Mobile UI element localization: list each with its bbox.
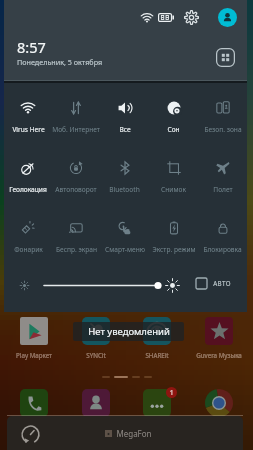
button[interactable]: User account [218, 8, 237, 27]
button[interactable]: 1 [130, 389, 184, 431]
button[interactable]: Сон [149, 85, 198, 134]
button[interactable]: Экстр. режим [149, 205, 198, 254]
staticText: Безоп. зона [204, 125, 242, 134]
button[interactable]: Virus Here [4, 85, 52, 134]
staticText: Все [119, 125, 131, 134]
button[interactable]: Моб. Интернет [52, 85, 100, 134]
staticText: Фонарик [14, 245, 43, 254]
staticText: Сон [167, 125, 180, 134]
staticText: 1 [169, 388, 174, 398]
button[interactable]: Геолокация [4, 145, 52, 194]
staticText: 8:57 [17, 37, 46, 57]
staticText: Моб. Интернет [52, 125, 100, 134]
button[interactable]: Контакты [69, 389, 123, 431]
staticText: АВТО [213, 279, 231, 288]
staticText: Virus Here [12, 125, 45, 134]
button[interactable]: Автоповорот [52, 145, 100, 194]
staticText: Контакты [82, 423, 111, 431]
button[interactable]: Полет [198, 145, 247, 194]
button[interactable]: MegaFon [105, 428, 152, 439]
staticText: Геолокация [9, 185, 47, 194]
button[interactable]: Settings [184, 10, 199, 25]
other: Battery 89% [158, 13, 174, 22]
staticText: Нет уведомлений [88, 325, 170, 338]
button[interactable]: Edit tiles [216, 48, 235, 67]
button[interactable]: Снимок [149, 145, 198, 194]
staticText: Автоповорот [55, 185, 97, 194]
button[interactable]: SYNCit [69, 317, 123, 359]
staticText: Guvera Музыка [196, 351, 242, 359]
staticText: Понедельник, 5 октября [17, 57, 103, 67]
staticText: SYNCit [86, 351, 106, 359]
button[interactable]: Безоп. зона [198, 85, 247, 134]
staticText: Смарт-меню [105, 245, 145, 254]
other: Wi-Fi [141, 12, 153, 24]
staticText: Сообщения [139, 423, 175, 431]
staticText: Снимок [161, 185, 186, 194]
button[interactable]: Беспр. экран [52, 205, 100, 254]
button[interactable]: Bluetooth [100, 145, 149, 194]
staticText: Bluetooth [109, 185, 140, 194]
staticText: SHAREit [145, 351, 169, 359]
staticText: Play Маркет [16, 351, 52, 359]
button[interactable]: Guvera Музыка [192, 317, 246, 359]
staticText: Телефон [21, 423, 47, 431]
staticText: Беспр. экран [56, 245, 97, 254]
button[interactable]: Play Маркет [7, 317, 61, 359]
button[interactable]: Chrome [192, 389, 246, 431]
staticText: Блокировка [203, 245, 242, 254]
button[interactable]: SHAREit [130, 317, 184, 359]
button[interactable]: Фонарик [4, 205, 52, 254]
button[interactable]: Телефон [7, 389, 61, 431]
button[interactable]: Recent apps [20, 424, 41, 445]
button[interactable]: Смарт-меню [100, 205, 149, 254]
staticText: Полет [213, 185, 233, 194]
button[interactable]: АВТО [196, 278, 231, 289]
button[interactable]: Все [100, 85, 149, 134]
button[interactable]: Блокировка [198, 205, 247, 254]
staticText: MegaFon [116, 428, 152, 439]
staticText: Экстр. режим [152, 245, 196, 254]
